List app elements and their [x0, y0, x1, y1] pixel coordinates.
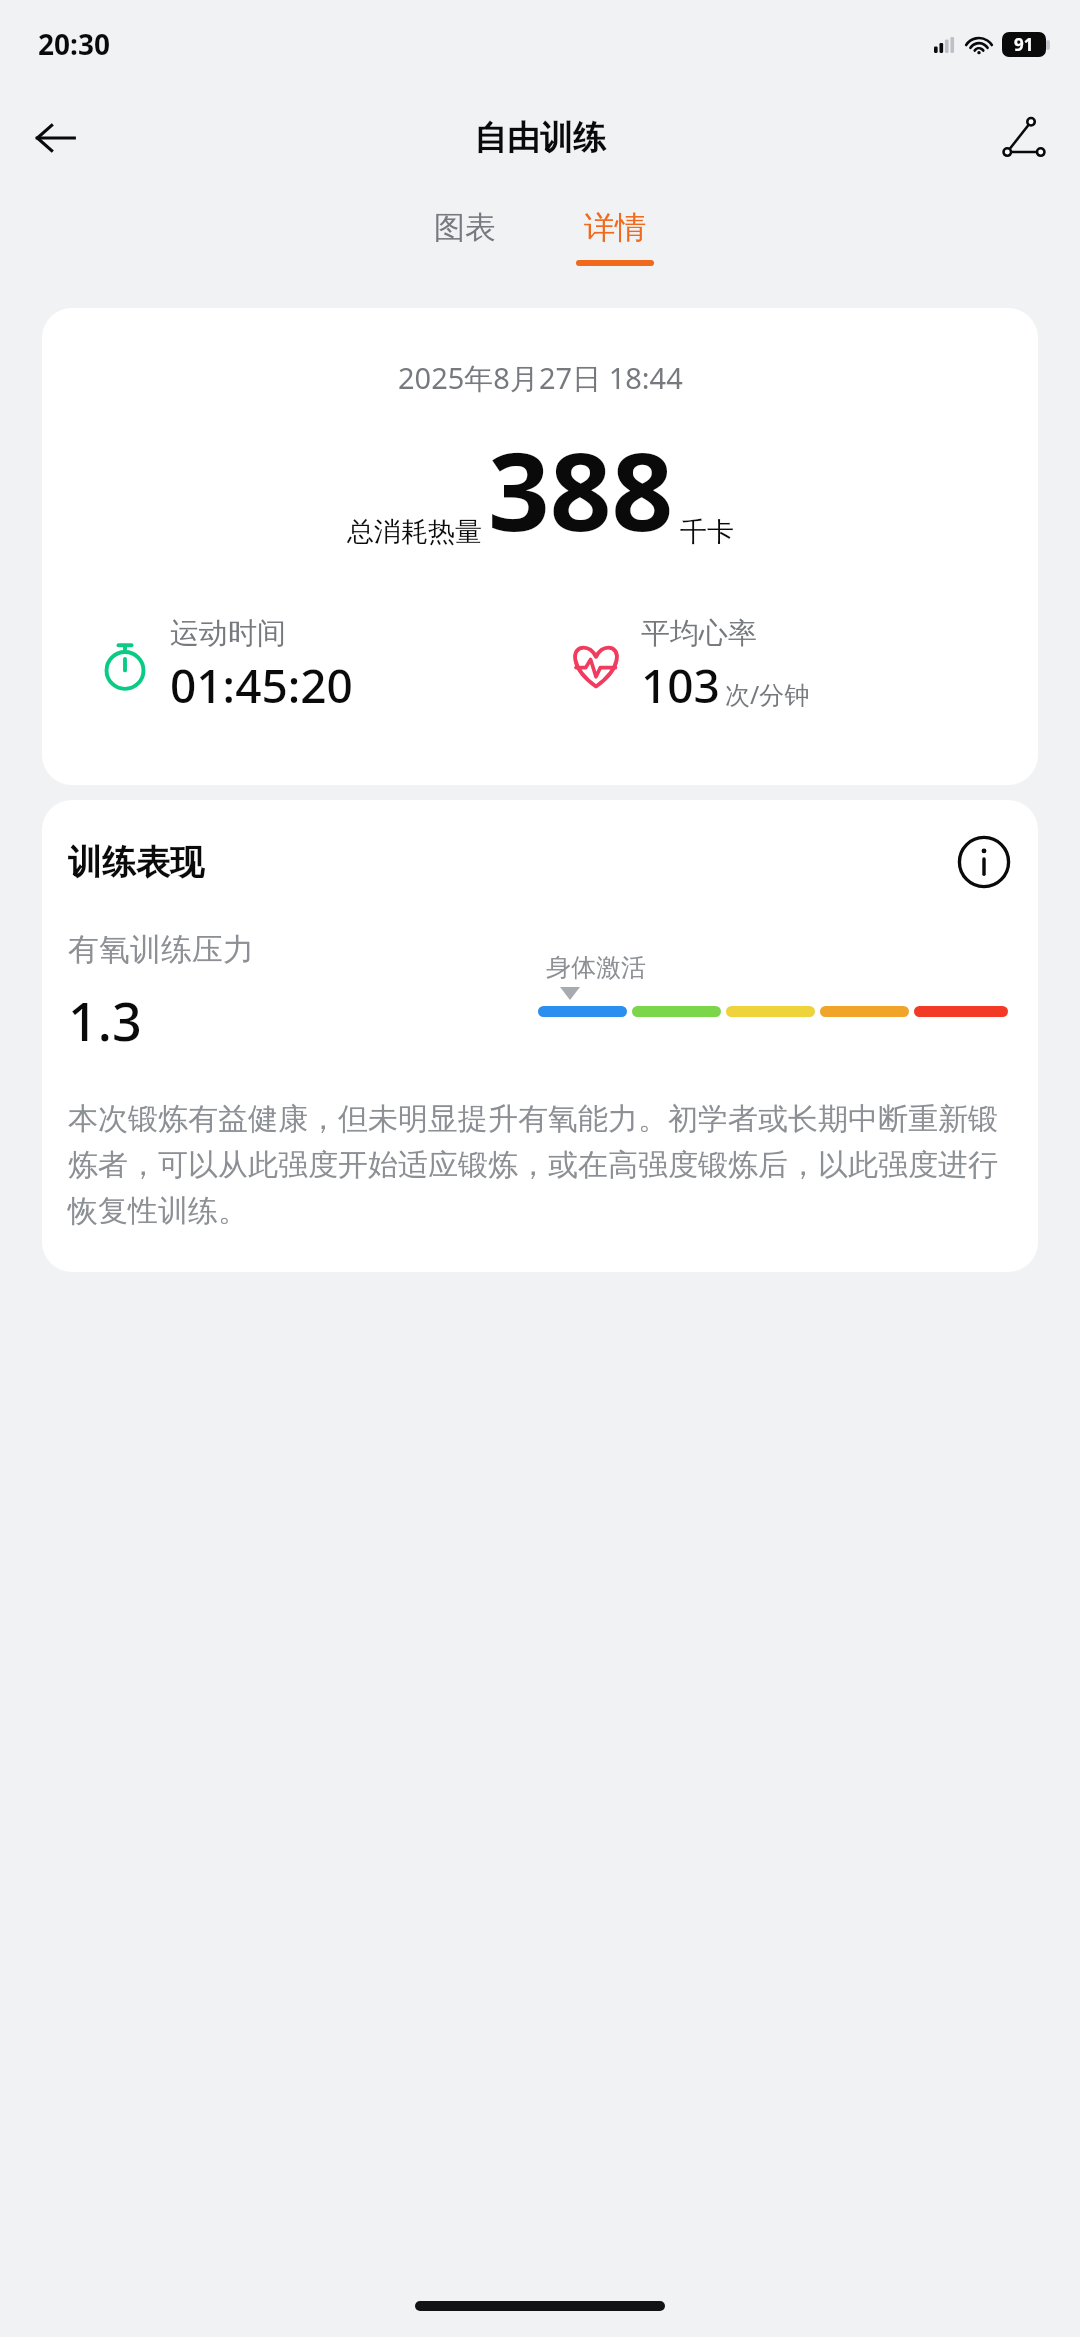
staticText: 2025年8月27日 18:44	[398, 358, 683, 398]
staticText: 自由训练	[474, 117, 606, 159]
staticText: 次/分钟	[725, 677, 810, 711]
staticText: 身体激活	[546, 952, 646, 983]
staticText: 20:30	[38, 25, 110, 63]
button[interactable]: 平均心率	[567, 615, 1038, 717]
staticText: 01:45:20	[170, 654, 353, 717]
button[interactable]: 详情	[540, 188, 690, 286]
staticText: 图表	[434, 208, 496, 247]
staticText: 总消耗热量	[347, 515, 482, 549]
staticText: 有氧训练压力	[68, 930, 254, 969]
staticText: 388	[488, 416, 674, 563]
button[interactable]: Info	[952, 830, 1016, 894]
staticText: 详情	[584, 208, 646, 247]
staticText: 平均心率	[641, 615, 757, 652]
staticText: 1.3	[68, 985, 142, 1056]
button[interactable]: 图表	[390, 188, 540, 286]
button[interactable]: 运动时间	[96, 615, 567, 717]
staticText: 千卡	[680, 515, 734, 549]
staticText: 训练表现	[68, 841, 204, 884]
staticText: 运动时间	[170, 615, 286, 652]
staticText: 103	[641, 654, 720, 717]
button[interactable]: Back	[22, 105, 88, 171]
staticText: 91	[1014, 33, 1034, 56]
staticText: 本次锻炼有益健康，但未明显提升有氧能力。初学者或长期中断重新锻炼者，可以从此强度…	[68, 1100, 1012, 1230]
button[interactable]: Share	[990, 104, 1058, 172]
